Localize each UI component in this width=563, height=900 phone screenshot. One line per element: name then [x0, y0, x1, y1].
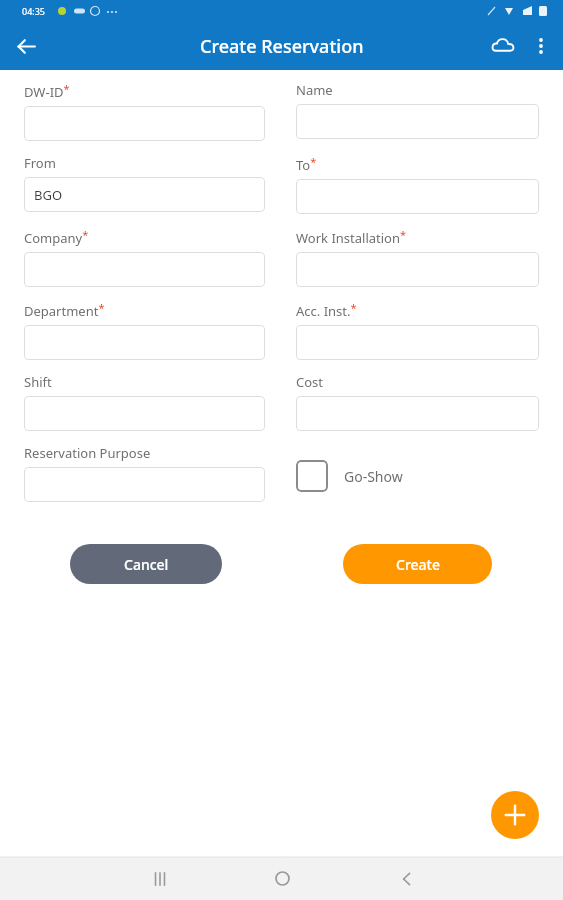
button[interactable]: Home: [260, 857, 304, 900]
button[interactable]: [24, 467, 265, 502]
staticText: Shift: [24, 373, 52, 391]
button[interactable]: Cancel: [70, 544, 222, 584]
button[interactable]: [24, 252, 265, 287]
button[interactable]: [24, 396, 265, 431]
button[interactable]: [296, 179, 539, 214]
button[interactable]: Go-Show: [296, 460, 539, 492]
button[interactable]: Sync: [483, 26, 523, 66]
button[interactable]: Recents: [138, 857, 182, 900]
staticText: To*: [296, 154, 317, 174]
button[interactable]: BGO: [24, 177, 265, 212]
staticText: Name: [296, 81, 333, 99]
staticText: Company*: [24, 227, 89, 247]
staticText: Cancel: [124, 555, 169, 574]
staticText: From: [24, 154, 56, 172]
staticText: 04:35: [22, 5, 46, 17]
staticText: Cost: [296, 373, 324, 391]
button[interactable]: Create: [343, 544, 492, 584]
button[interactable]: Add: [491, 791, 539, 839]
button[interactable]: More options: [523, 28, 559, 64]
staticText: Reservation Purpose: [24, 444, 151, 462]
staticText: Go-Show: [344, 467, 403, 486]
button[interactable]: [24, 106, 265, 141]
staticText: Work Installation*: [296, 227, 407, 247]
button[interactable]: Back: [385, 857, 429, 900]
button[interactable]: [296, 252, 539, 287]
staticText: Department*: [24, 300, 105, 320]
staticText: DW-ID*: [24, 81, 70, 101]
button[interactable]: [296, 104, 539, 139]
staticText: BGO: [34, 186, 63, 204]
staticText: Create: [396, 555, 440, 574]
staticText: Acc. Inst.*: [296, 300, 357, 320]
button[interactable]: [24, 325, 265, 360]
button[interactable]: [296, 396, 539, 431]
staticText: Create Reservation: [200, 34, 364, 59]
button[interactable]: Back: [6, 26, 46, 66]
button[interactable]: [296, 325, 539, 360]
